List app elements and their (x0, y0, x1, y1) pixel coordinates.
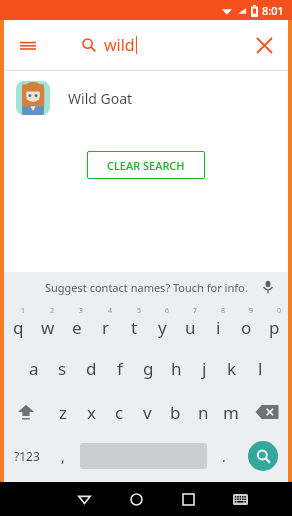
button[interactable]: , (49, 434, 77, 478)
button[interactable]: f (106, 346, 134, 390)
button[interactable]: Suggest contact names? Touch for info. (4, 272, 288, 302)
button[interactable]: Home (110, 482, 162, 516)
staticText: u (185, 316, 196, 339)
staticText: o (241, 316, 252, 339)
staticText: ?123 (14, 448, 40, 464)
staticText: h (171, 357, 182, 380)
button[interactable]: k (218, 346, 246, 390)
staticText: 2 (50, 306, 55, 316)
button[interactable]: g (134, 346, 162, 390)
staticText: 7 (193, 306, 198, 316)
staticText: f (117, 357, 123, 380)
button[interactable]: 5 (120, 302, 148, 346)
button[interactable]: s (48, 346, 77, 390)
staticText: 6 (165, 306, 170, 316)
staticText: t (131, 316, 138, 339)
staticText: e (72, 316, 82, 339)
button[interactable]: 6 (148, 302, 176, 346)
button[interactable]: 4 (91, 302, 120, 346)
staticText: Suggest contact names? Touch for info. (45, 280, 248, 295)
staticText: 1 (21, 306, 26, 316)
staticText: b (170, 401, 181, 424)
button[interactable]: Recents (162, 482, 214, 516)
staticText: p (269, 316, 280, 339)
button[interactable]: CLEAR SEARCH (87, 151, 205, 179)
staticText: . (222, 447, 226, 466)
button[interactable]: Switch keyboard (214, 482, 266, 516)
button[interactable]: a (19, 346, 48, 390)
staticText: 4 (108, 306, 113, 316)
button[interactable]: v (133, 390, 161, 434)
button[interactable]: c (105, 390, 133, 434)
button[interactable]: Backspace (245, 390, 288, 434)
button[interactable]: ?123 (4, 434, 49, 478)
button[interactable]: 9 (232, 302, 260, 346)
button[interactable]: m (217, 390, 245, 434)
staticText: r (102, 316, 110, 339)
staticText: 3 (79, 306, 84, 316)
staticText: 8 (221, 306, 226, 316)
staticText: m (223, 401, 239, 424)
staticText: s (58, 357, 67, 380)
staticText: l (258, 357, 263, 380)
button[interactable]: 8 (204, 302, 232, 346)
staticText: 9 (249, 306, 254, 316)
button[interactable]: 0 (260, 302, 288, 346)
staticText: k (227, 357, 237, 380)
staticText: q (13, 316, 24, 339)
staticText: v (143, 401, 152, 424)
staticText: d (86, 357, 97, 380)
button[interactable]: b (161, 390, 189, 434)
staticText: j (202, 357, 207, 380)
button[interactable]: 2 (33, 302, 62, 346)
button[interactable]: Wild Goat (4, 71, 288, 125)
staticText: a (29, 357, 39, 380)
button[interactable]: h (162, 346, 190, 390)
button[interactable]: 1 (4, 302, 33, 346)
button[interactable]: z (48, 390, 77, 434)
button[interactable]: j (190, 346, 218, 390)
staticText: z (59, 401, 67, 424)
staticText: g (143, 357, 154, 380)
staticText: CLEAR SEARCH (107, 158, 185, 173)
button[interactable]: l (246, 346, 274, 390)
staticText: Wild Goat (68, 89, 133, 108)
staticText: c (115, 401, 124, 424)
button[interactable]: Search (248, 441, 278, 471)
staticText: x (87, 401, 96, 424)
staticText: , (61, 447, 65, 466)
staticText: 8:01 (262, 3, 284, 18)
staticText: 0 (277, 306, 282, 316)
button[interactable]: n (189, 390, 217, 434)
button[interactable]: d (77, 346, 106, 390)
button[interactable]: x (77, 390, 105, 434)
staticText: i (216, 316, 221, 339)
button[interactable]: Clear query (240, 20, 288, 70)
button[interactable]: 7 (176, 302, 204, 346)
button[interactable]: Shift (4, 390, 48, 434)
button[interactable]: Back (58, 482, 110, 516)
button[interactable]: Voice input (258, 277, 278, 297)
staticText: wild (104, 34, 135, 56)
button[interactable]: . (210, 434, 238, 478)
staticText: y (158, 316, 167, 339)
button[interactable]: Menu (4, 20, 52, 70)
staticText: n (198, 401, 209, 424)
staticText: 5 (137, 306, 142, 316)
staticText: w (41, 316, 55, 339)
button[interactable]: 3 (62, 302, 91, 346)
